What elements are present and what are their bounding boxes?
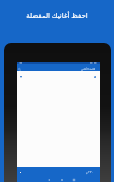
button[interactable]: Search xyxy=(18,68,21,71)
staticText: ٢:٣٠ م xyxy=(86,170,94,174)
button[interactable]: Search xyxy=(17,64,100,71)
button[interactable]: Back xyxy=(47,178,50,181)
staticText: قائمة الأغاني xyxy=(81,67,96,71)
staticText: احفظ أغانيك المفضلة xyxy=(26,11,88,21)
button[interactable]: Recent apps xyxy=(72,178,75,181)
button[interactable]: Home xyxy=(60,178,63,181)
button[interactable]: Sort xyxy=(20,76,22,78)
button[interactable]: Account xyxy=(94,76,96,78)
